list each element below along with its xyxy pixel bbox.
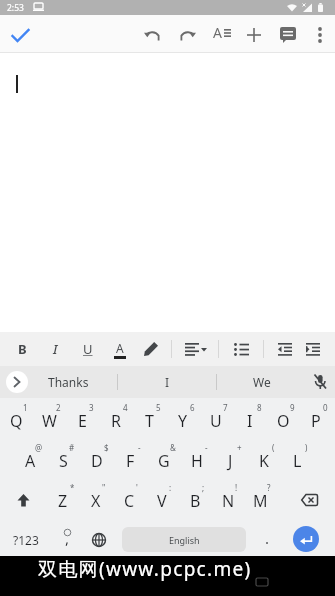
button[interactable]: G <box>148 447 180 475</box>
button[interactable]: Q <box>0 407 32 435</box>
button[interactable] <box>137 335 165 363</box>
button[interactable]: N <box>212 487 244 515</box>
button[interactable]: Z <box>47 487 79 515</box>
button[interactable] <box>299 335 327 363</box>
button[interactable]: R <box>100 407 132 435</box>
button[interactable]: ?123 <box>6 526 46 554</box>
staticText: 3 <box>89 402 94 413</box>
staticText: - <box>205 442 208 453</box>
staticText: I <box>53 340 58 358</box>
button[interactable] <box>293 486 325 514</box>
button[interactable]: B <box>179 487 211 515</box>
staticText: S <box>59 450 68 472</box>
staticText: 6 <box>190 402 195 413</box>
staticText: A <box>213 23 222 42</box>
staticText: 双电网(www.pcpc.me) <box>38 556 252 582</box>
button[interactable]: V <box>146 487 178 515</box>
staticText: ? <box>267 482 271 493</box>
button[interactable]: . <box>254 526 280 554</box>
staticText: C <box>124 490 135 512</box>
button[interactable]: , <box>52 526 82 554</box>
staticText: V <box>157 490 167 512</box>
button[interactable]: U <box>200 407 232 435</box>
button[interactable] <box>6 21 34 49</box>
staticText: H <box>191 450 203 472</box>
button[interactable] <box>6 371 28 393</box>
staticText: U <box>83 340 93 358</box>
button[interactable]: C <box>113 487 145 515</box>
button[interactable] <box>84 526 114 554</box>
button[interactable]: K <box>248 447 280 475</box>
button[interactable] <box>173 21 201 49</box>
button[interactable]: A <box>207 21 235 49</box>
button[interactable]: H <box>181 447 213 475</box>
staticText: N <box>222 490 235 512</box>
button[interactable] <box>274 21 302 49</box>
staticText: J <box>228 450 233 472</box>
staticText: * <box>70 482 75 493</box>
button[interactable]: P <box>300 407 332 435</box>
staticText: English <box>169 534 200 546</box>
button[interactable]: B <box>8 335 36 363</box>
button[interactable]: E <box>66 407 98 435</box>
button[interactable]: Thanks <box>36 366 100 398</box>
staticText: W <box>42 410 57 432</box>
button[interactable]: W <box>33 407 65 435</box>
button[interactable]: J <box>214 447 246 475</box>
staticText: " <box>102 482 106 493</box>
staticText: B <box>190 490 201 512</box>
button[interactable]: U <box>74 335 102 363</box>
button[interactable]: English <box>122 527 246 552</box>
button[interactable]: A <box>106 335 134 363</box>
staticText: E <box>78 410 87 432</box>
button[interactable]: S <box>47 447 79 475</box>
staticText: K <box>259 450 269 472</box>
button[interactable]: Y <box>167 407 199 435</box>
staticText: - <box>138 442 141 453</box>
button[interactable] <box>306 368 334 396</box>
staticText: Q <box>10 410 23 432</box>
staticText: B <box>18 340 27 358</box>
staticText: 9 <box>290 402 295 413</box>
button[interactable] <box>138 21 166 49</box>
staticText: A <box>116 340 124 356</box>
staticText: . <box>265 528 270 548</box>
button[interactable]: I <box>234 407 266 435</box>
button[interactable]: X <box>80 487 112 515</box>
staticText: 2:53 <box>7 2 24 14</box>
staticText: Y <box>178 410 188 432</box>
staticText: 7 <box>223 402 228 413</box>
button[interactable] <box>293 526 319 552</box>
button[interactable] <box>8 486 38 514</box>
button[interactable]: F <box>114 447 146 475</box>
staticText: A <box>25 450 36 472</box>
button[interactable] <box>227 335 255 363</box>
staticText: # <box>69 442 75 453</box>
button[interactable]: L <box>281 447 313 475</box>
staticText: 2 <box>56 402 61 413</box>
staticText: 1 <box>23 402 28 413</box>
staticText: D <box>91 450 103 472</box>
staticText: 4 <box>123 402 128 413</box>
staticText: $ <box>104 442 109 453</box>
button[interactable]: We <box>230 366 294 398</box>
button[interactable] <box>306 21 334 49</box>
button[interactable]: D <box>81 447 113 475</box>
button[interactable]: I <box>41 335 69 363</box>
button[interactable]: M <box>244 487 276 515</box>
button[interactable] <box>240 21 268 49</box>
staticText: ' <box>136 482 138 493</box>
button[interactable]: A <box>14 447 46 475</box>
staticText: ?123 <box>13 532 39 548</box>
button[interactable]: I <box>135 366 199 398</box>
button[interactable] <box>178 335 214 363</box>
button[interactable]: O <box>267 407 299 435</box>
staticText: O <box>277 410 290 432</box>
staticText: P <box>311 410 321 432</box>
button[interactable]: T <box>133 407 165 435</box>
staticText: G <box>158 450 170 472</box>
button[interactable] <box>271 335 299 363</box>
staticText: I <box>247 410 253 432</box>
staticText: We <box>253 374 271 390</box>
staticText: + <box>237 442 242 453</box>
